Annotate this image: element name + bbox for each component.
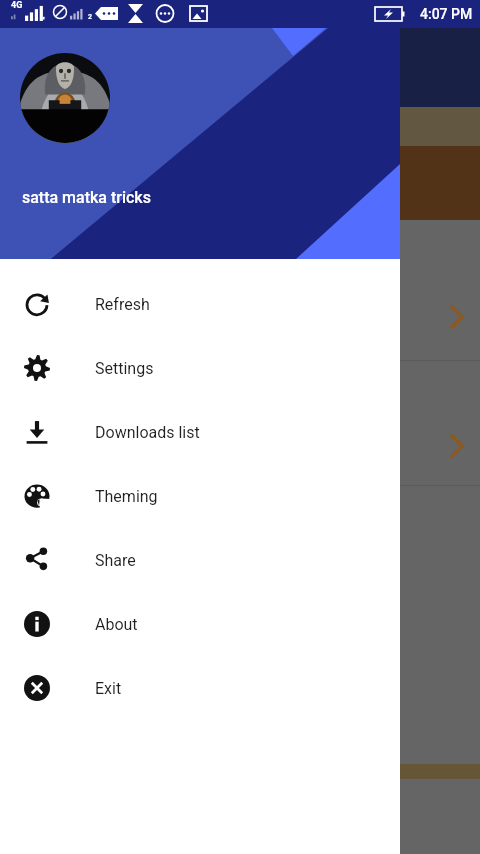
staticText: satta matka tricks — [22, 188, 151, 207]
staticText: Share — [95, 551, 136, 570]
button[interactable]: Theming — [0, 464, 400, 528]
button[interactable]: Share — [0, 528, 400, 592]
staticText: Refresh — [95, 295, 150, 314]
button[interactable]: Open item — [0, 220, 480, 360]
staticText: 4G — [11, 0, 23, 11]
staticText: Settings — [95, 359, 154, 378]
button[interactable]: Profile picture — [20, 53, 110, 143]
button[interactable]: Open item — [0, 361, 480, 485]
staticText: 4:07 PM — [420, 6, 473, 22]
button[interactable]: About — [0, 592, 400, 656]
button[interactable]: Refresh — [0, 272, 400, 336]
staticText: About — [95, 615, 138, 634]
button[interactable]: Settings — [0, 336, 400, 400]
staticText: Exit — [95, 679, 122, 698]
staticText: Downloads list — [95, 423, 200, 442]
button[interactable]: Exit — [0, 656, 400, 720]
staticText: Theming — [95, 487, 158, 506]
button[interactable]: Downloads list — [0, 400, 400, 464]
staticText: 2 — [88, 13, 93, 21]
